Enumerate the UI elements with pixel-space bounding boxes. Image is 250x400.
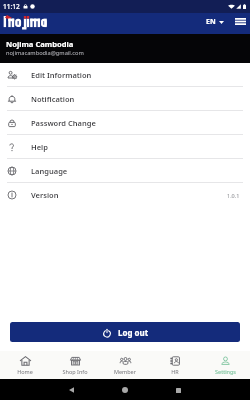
- staticText: nojimacambodia@gmail.com: [6, 49, 84, 57]
- button[interactable]: Language: [0, 159, 250, 183]
- staticText: Language: [31, 166, 68, 176]
- staticText: EN: [206, 17, 216, 27]
- button[interactable]: Password Change: [0, 111, 250, 135]
- button[interactable]: nojima: [3, 17, 47, 30]
- button[interactable]: Nojima Cambodia: [0, 34, 250, 63]
- staticText: 1.0.1: [227, 192, 240, 199]
- staticText: Log out: [118, 327, 149, 338]
- button[interactable]: Home: [118, 383, 132, 397]
- button[interactable]: Edit Information: [0, 63, 250, 87]
- button[interactable]: Settings: [200, 351, 250, 379]
- staticText: Notification: [31, 94, 75, 104]
- staticText: 11:12: [3, 2, 20, 11]
- button[interactable]: Help: [0, 135, 250, 159]
- staticText: Shop Info: [62, 368, 88, 375]
- button[interactable]: Back: [64, 383, 78, 397]
- button[interactable]: Notification: [0, 87, 250, 111]
- button[interactable]: Menu: [234, 14, 247, 29]
- button[interactable]: Recent apps: [171, 383, 185, 397]
- button[interactable]: EN: [204, 15, 226, 29]
- staticText: Home: [17, 368, 33, 375]
- staticText: Version: [31, 190, 59, 200]
- staticText: Settings: [215, 368, 236, 375]
- button[interactable]: Shop Info: [50, 351, 100, 379]
- staticText: HR: [171, 368, 179, 375]
- button[interactable]: HR: [150, 351, 200, 379]
- button[interactable]: Log out: [10, 322, 240, 342]
- button[interactable]: Member: [100, 351, 150, 379]
- staticText: Nojima Cambodia: [6, 39, 74, 49]
- button[interactable]: Version: [0, 183, 250, 207]
- staticText: Member: [114, 368, 136, 375]
- button[interactable]: Home: [0, 351, 50, 379]
- staticText: Edit Information: [31, 70, 92, 80]
- staticText: Password Change: [31, 118, 96, 128]
- staticText: Help: [31, 142, 48, 152]
